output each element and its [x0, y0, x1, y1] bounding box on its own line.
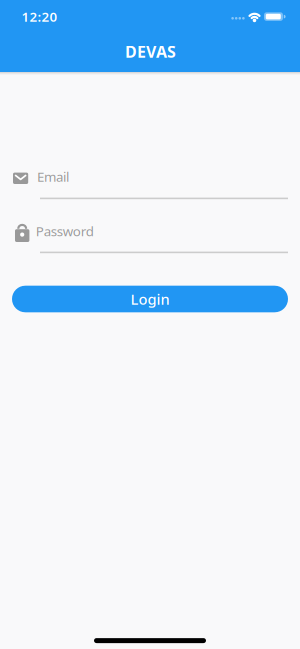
button[interactable]: Email [12, 164, 288, 202]
staticText: Password [36, 222, 94, 240]
staticText: 12:20 [21, 8, 57, 25]
button[interactable]: Password [12, 220, 288, 256]
button[interactable]: Login [12, 286, 288, 312]
staticText: DEVAS [125, 41, 176, 62]
staticText: Login [130, 289, 169, 309]
staticText: Email [37, 168, 69, 185]
